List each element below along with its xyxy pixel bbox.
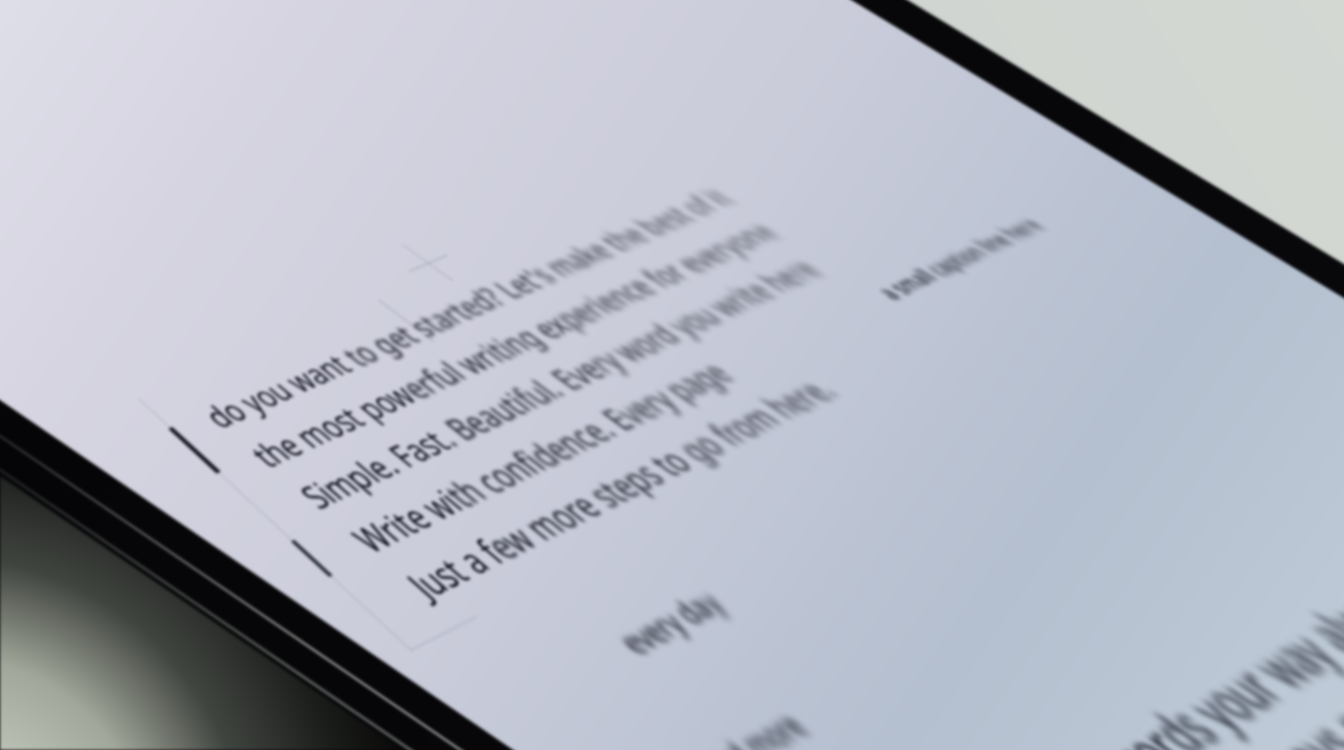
- button[interactable]: Phone screen showing a document: [0, 0, 1344, 750]
